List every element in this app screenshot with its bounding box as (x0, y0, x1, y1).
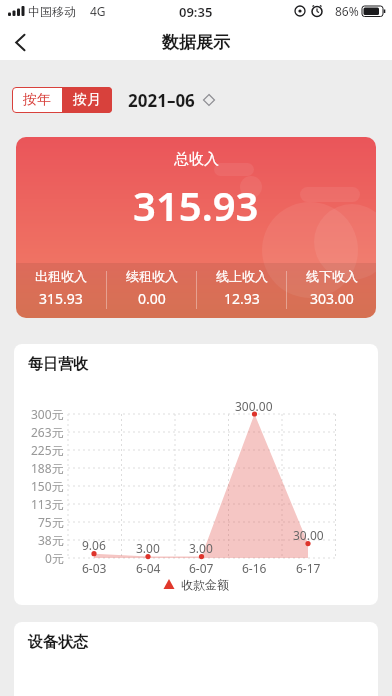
staticText: 263元 (31, 424, 64, 440)
staticText: 6-07 (189, 560, 214, 574)
staticText: 315.93 (133, 178, 259, 226)
staticText: 75元 (38, 514, 64, 530)
button[interactable]: 2021–06 (128, 86, 215, 114)
staticText: 113元 (31, 496, 64, 512)
staticText: 300.00 (235, 398, 273, 412)
staticText: 0.00 (138, 289, 166, 308)
button[interactable] (4, 27, 36, 57)
staticText: 4G (90, 3, 106, 19)
staticText: 按年 (23, 91, 51, 109)
staticText: 收款金额 (181, 577, 229, 592)
staticText: 总收入 (174, 150, 219, 169)
staticText: 9.06 (82, 537, 106, 551)
staticText: 数据展示 (162, 32, 230, 53)
staticText: 6-03 (82, 560, 107, 574)
staticText: 225元 (31, 442, 64, 458)
button[interactable]: 按月 (62, 87, 112, 113)
staticText: 09:35 (179, 3, 213, 19)
staticText: 线上收入 (216, 268, 268, 284)
staticText: 30.00 (293, 527, 324, 541)
staticText: 6-16 (242, 560, 267, 574)
staticText: 按月 (73, 91, 101, 109)
staticText: 3.00 (189, 540, 213, 554)
staticText: 12.93 (224, 289, 260, 308)
staticText: 6-17 (296, 560, 321, 574)
staticText: 出租收入 (35, 268, 87, 284)
staticText: 6-04 (136, 560, 161, 574)
staticText: 2021–06 (128, 89, 195, 112)
staticText: 续租收入 (126, 268, 178, 284)
button[interactable]: 按年 (12, 87, 62, 113)
staticText: 中国移动 (28, 4, 76, 19)
staticText: 每日营收 (28, 355, 88, 374)
staticText: 设备状态 (28, 633, 88, 652)
staticText: 300元 (31, 406, 64, 422)
staticText: 38元 (38, 532, 64, 548)
staticText: 3.00 (136, 540, 160, 554)
staticText: 315.93 (39, 289, 83, 308)
staticText: 150元 (31, 478, 64, 494)
staticText: 线下收入 (306, 268, 358, 284)
staticText: 303.00 (310, 289, 354, 308)
staticText: 86% (335, 3, 359, 19)
staticText: 188元 (31, 460, 64, 476)
staticText: 0元 (45, 550, 64, 566)
